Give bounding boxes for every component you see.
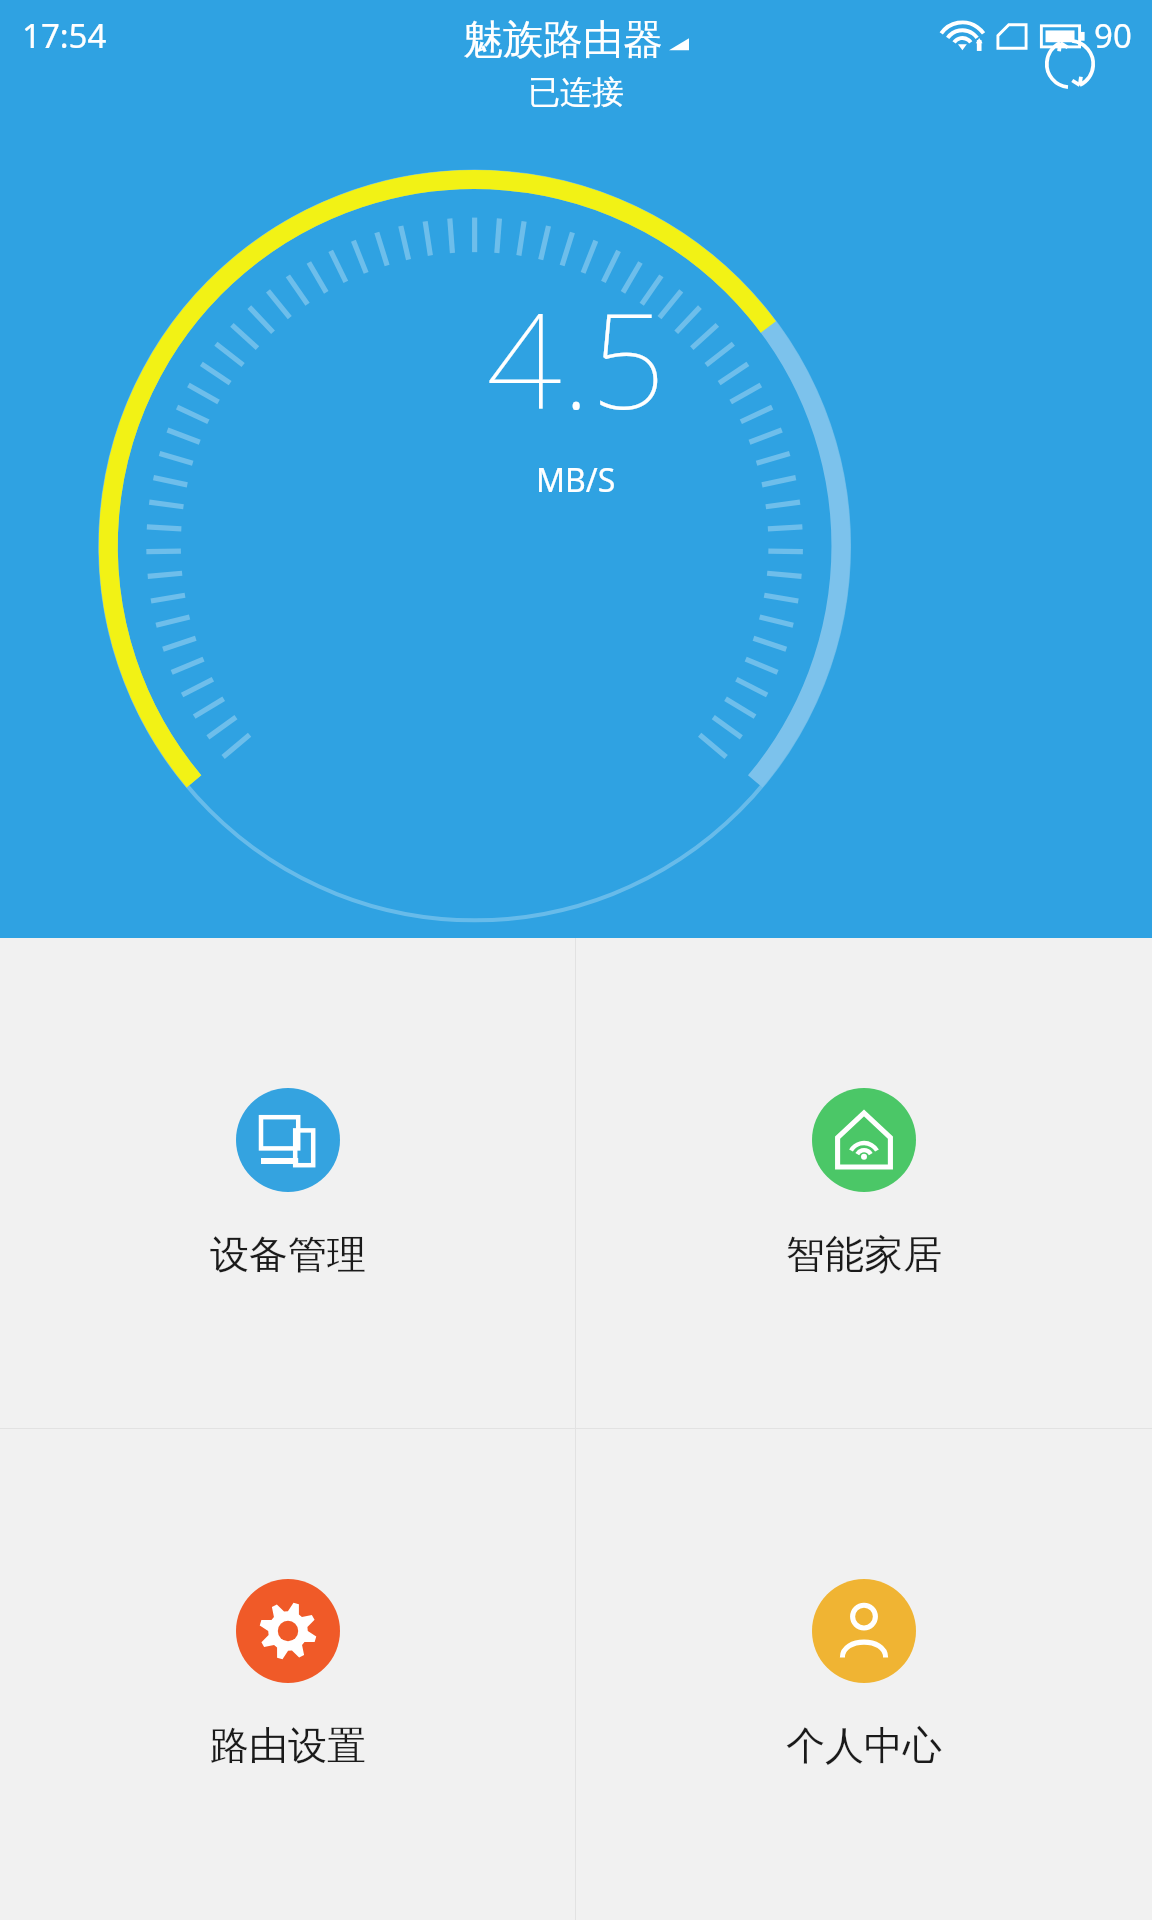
button[interactable]: 设备管理 — [0, 938, 575, 1428]
staticText: 17:54 — [22, 13, 107, 58]
staticText: 4.5 — [486, 268, 666, 448]
staticText: 设备管理 — [210, 1230, 366, 1279]
button[interactable]: 智能家居 — [576, 938, 1152, 1428]
button[interactable]: 魅族路由器 — [463, 14, 689, 112]
staticText: 路由设置 — [210, 1721, 366, 1770]
button[interactable]: 路由设置 — [0, 1429, 575, 1920]
staticText: MB/S — [536, 458, 616, 502]
staticText: 魅族路由器 — [463, 14, 663, 64]
button[interactable]: 个人中心 — [576, 1429, 1152, 1920]
staticText: 个人中心 — [786, 1721, 942, 1770]
button[interactable]: Refresh — [1028, 22, 1112, 106]
staticText: 智能家居 — [786, 1230, 942, 1279]
staticText: 90 — [1094, 13, 1132, 58]
staticText: 已连接 — [528, 72, 624, 112]
